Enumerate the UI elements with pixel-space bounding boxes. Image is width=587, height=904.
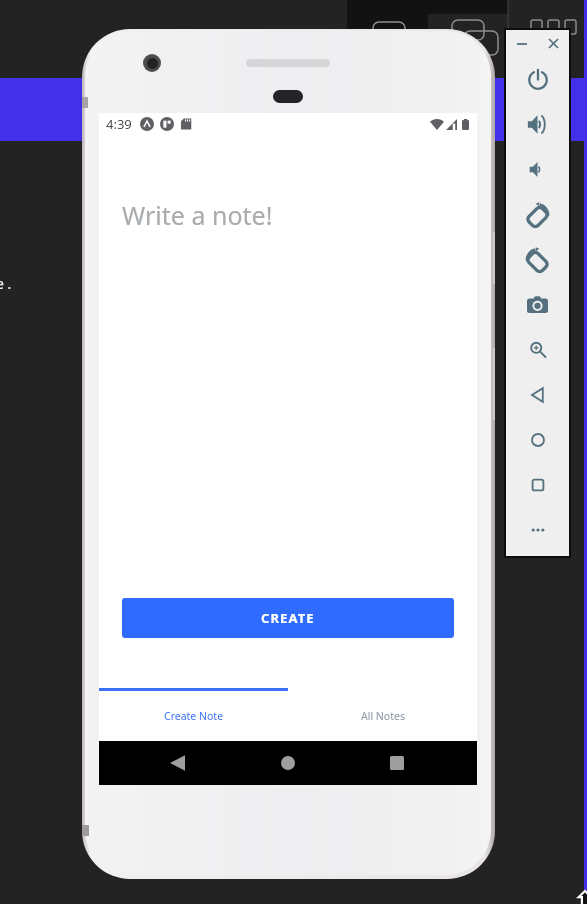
button[interactable]: Create Note	[99, 691, 288, 741]
button[interactable]: Overview	[506, 462, 569, 507]
button[interactable]: Screenshot	[506, 282, 569, 327]
button[interactable]: All Notes	[288, 691, 477, 741]
staticText: CREATE	[261, 609, 315, 627]
button[interactable]: Volume down	[506, 147, 569, 192]
button[interactable]: More	[506, 507, 569, 552]
button[interactable]: CREATE	[122, 598, 454, 638]
staticText: e .	[0, 274, 12, 293]
button[interactable]: Power	[506, 57, 569, 102]
button[interactable]: Back	[506, 372, 569, 417]
staticText: Create Note	[164, 709, 224, 723]
staticText: 4:39	[106, 115, 132, 133]
button[interactable]: Recent apps	[355, 741, 439, 785]
button[interactable]: Zoom	[506, 327, 569, 372]
button[interactable]: Volume up	[506, 102, 569, 147]
button[interactable]: Home	[506, 417, 569, 462]
button[interactable]: Home	[245, 741, 330, 785]
button[interactable]: Rotate right	[506, 237, 569, 282]
staticText: All Notes	[361, 709, 405, 723]
button[interactable]: Close	[537, 30, 569, 57]
button[interactable]: Rotate left	[506, 192, 569, 237]
button[interactable]: Back	[135, 741, 219, 785]
staticText: Write a note!	[122, 198, 273, 232]
button[interactable]: Minimize	[506, 30, 537, 57]
